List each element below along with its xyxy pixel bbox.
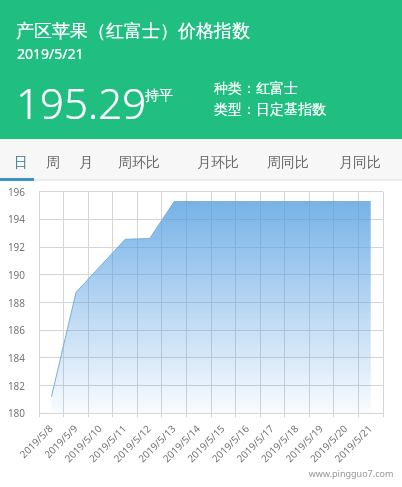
staticText: 月同比 bbox=[339, 154, 381, 172]
button[interactable]: 周同比 bbox=[262, 147, 314, 179]
button[interactable]: 周环比 bbox=[113, 147, 165, 179]
button[interactable]: 月同比 bbox=[334, 147, 386, 179]
button[interactable]: 月 bbox=[72, 147, 100, 179]
staticText: 周 bbox=[46, 154, 60, 172]
staticText: 产区苹果（红富士）价格指数 bbox=[16, 20, 250, 43]
staticText: 日 bbox=[14, 154, 28, 172]
button[interactable]: 周 bbox=[39, 147, 67, 179]
staticText: 周同比 bbox=[267, 154, 309, 172]
staticText: 月环比 bbox=[197, 154, 239, 172]
staticText: 周环比 bbox=[118, 154, 160, 172]
staticText: 种类：红富士 bbox=[214, 80, 298, 98]
staticText: 月 bbox=[79, 154, 93, 172]
staticText: 2019/5/21 bbox=[17, 44, 84, 63]
staticText: 持平 bbox=[145, 87, 173, 105]
staticText: 195.29 bbox=[16, 74, 147, 131]
staticText: 类型：日定基指数 bbox=[214, 101, 326, 119]
button[interactable]: 月环比 bbox=[192, 147, 244, 179]
button[interactable]: 日 bbox=[8, 147, 34, 179]
